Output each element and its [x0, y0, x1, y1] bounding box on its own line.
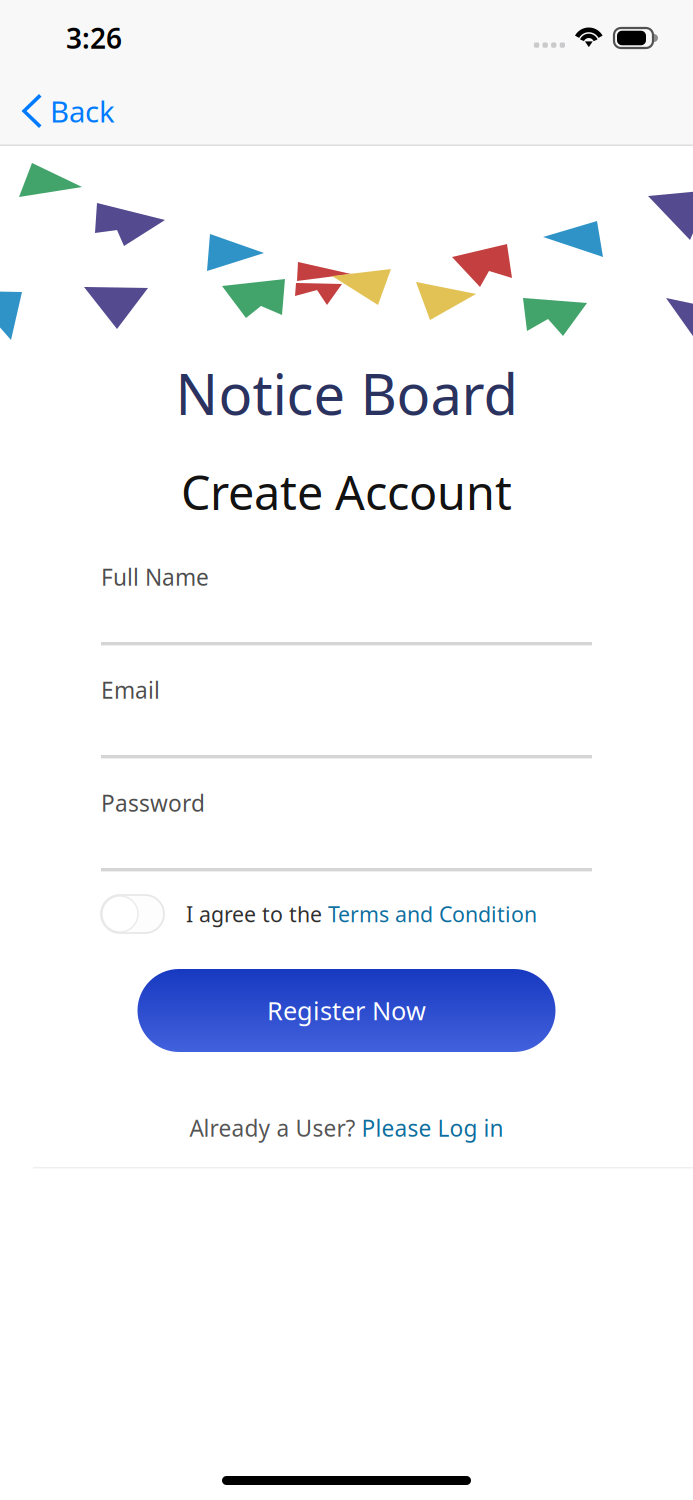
staticText: Register Now: [267, 994, 426, 1027]
staticText: Back: [50, 91, 115, 130]
staticText: Password: [101, 788, 205, 818]
staticText: 3:26: [66, 19, 122, 57]
staticText: Create Account: [181, 461, 512, 523]
button[interactable]: Please Log in: [361, 1113, 503, 1143]
staticText: Terms and Condition: [328, 900, 537, 928]
button[interactable]: Register Now: [137, 969, 555, 1052]
button[interactable]: Terms and Condition: [328, 900, 537, 928]
staticText: Please Log in: [361, 1113, 503, 1143]
staticText: Full Name: [101, 562, 209, 592]
staticText: I agree to the: [186, 900, 328, 928]
staticText: Already a User?: [189, 1113, 361, 1143]
button[interactable]: Back: [0, 76, 693, 146]
staticText: Email: [101, 675, 160, 705]
button[interactable]: I agree to the Terms and Condition: [101, 895, 164, 933]
staticText: Notice Board: [175, 356, 517, 430]
